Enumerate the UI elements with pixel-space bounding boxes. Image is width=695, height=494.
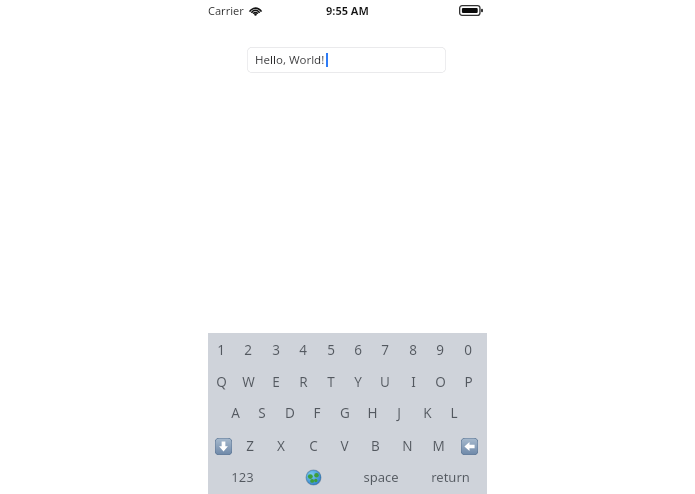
button[interactable]: D: [268, 400, 312, 426]
staticText: X: [277, 437, 285, 455]
staticText: K: [423, 404, 432, 422]
button[interactable]: O: [418, 369, 462, 395]
button[interactable]: H: [350, 400, 394, 426]
button[interactable]: R: [281, 369, 325, 395]
button[interactable]: 2: [226, 337, 270, 363]
button[interactable]: T: [309, 369, 353, 395]
button[interactable]: 9: [418, 337, 462, 363]
button[interactable]: 1: [199, 337, 243, 363]
staticText: V: [340, 437, 349, 455]
staticText: 5: [327, 341, 335, 359]
button[interactable]: Q: [199, 369, 243, 395]
staticText: 1: [217, 341, 225, 359]
button[interactable]: A: [213, 400, 257, 426]
staticText: B: [371, 437, 380, 455]
staticText: Z: [246, 437, 254, 455]
staticText: 123: [231, 468, 254, 486]
staticText: H: [367, 404, 378, 422]
staticText: space: [363, 468, 399, 486]
button[interactable]: K: [405, 400, 449, 426]
button[interactable]: 7: [363, 337, 407, 363]
button[interactable]: N: [385, 433, 429, 459]
staticText: E: [272, 373, 280, 391]
button[interactable]: Y: [336, 369, 380, 395]
staticText: 2: [244, 341, 252, 359]
button[interactable]: I: [391, 369, 435, 395]
button[interactable]: 4: [281, 337, 325, 363]
button[interactable]: space: [359, 464, 403, 490]
staticText: 4: [299, 341, 307, 359]
staticText: Carrier: [208, 3, 244, 18]
staticText: G: [340, 404, 350, 422]
staticText: C: [309, 437, 318, 455]
staticText: R: [299, 373, 308, 391]
staticText: 3: [272, 341, 280, 359]
button[interactable]: 8: [391, 337, 435, 363]
staticText: 0: [464, 341, 472, 359]
button[interactable]: J: [377, 400, 421, 426]
staticText: T: [327, 373, 335, 391]
button[interactable]: B: [353, 433, 397, 459]
button[interactable]: X: [259, 433, 303, 459]
button[interactable]: return: [428, 464, 472, 490]
button[interactable]: E: [254, 369, 298, 395]
staticText: U: [380, 373, 390, 391]
button[interactable]: 5: [309, 337, 353, 363]
button[interactable]: F: [295, 400, 339, 426]
button[interactable]: L: [432, 400, 476, 426]
staticText: S: [258, 404, 266, 422]
button[interactable]: P: [446, 369, 490, 395]
button[interactable]: G: [323, 400, 367, 426]
button[interactable]: Backspace: [461, 438, 478, 455]
staticText: 6: [354, 341, 362, 359]
staticText: return: [431, 468, 470, 486]
staticText: L: [450, 404, 458, 422]
staticText: F: [313, 404, 321, 422]
staticText: A: [231, 404, 240, 422]
button[interactable]: V: [322, 433, 366, 459]
staticText: N: [402, 437, 413, 455]
staticText: Y: [354, 373, 362, 391]
staticText: D: [285, 404, 295, 422]
button[interactable]: W: [226, 369, 270, 395]
button[interactable]: 123: [220, 464, 264, 490]
button[interactable]: Change keyboard language: [306, 470, 321, 485]
staticText: Q: [216, 373, 227, 391]
button[interactable]: 3: [254, 337, 298, 363]
staticText: I: [411, 373, 416, 391]
button[interactable]: 0: [446, 337, 490, 363]
staticText: J: [397, 404, 401, 422]
button[interactable]: Hello, World!: [247, 47, 446, 73]
button[interactable]: Z: [228, 433, 272, 459]
staticText: 8: [409, 341, 417, 359]
button[interactable]: S: [240, 400, 284, 426]
staticText: W: [242, 373, 255, 391]
staticText: 9:55 AM: [326, 3, 369, 18]
staticText: M: [432, 437, 445, 455]
button[interactable]: Shift: [215, 438, 232, 455]
staticText: 7: [381, 341, 389, 359]
staticText: Hello, World!: [255, 52, 325, 68]
staticText: O: [435, 373, 446, 391]
button[interactable]: U: [363, 369, 407, 395]
button[interactable]: M: [416, 433, 460, 459]
button[interactable]: 6: [336, 337, 380, 363]
staticText: 9: [436, 341, 444, 359]
staticText: P: [464, 373, 473, 391]
button[interactable]: C: [291, 433, 335, 459]
